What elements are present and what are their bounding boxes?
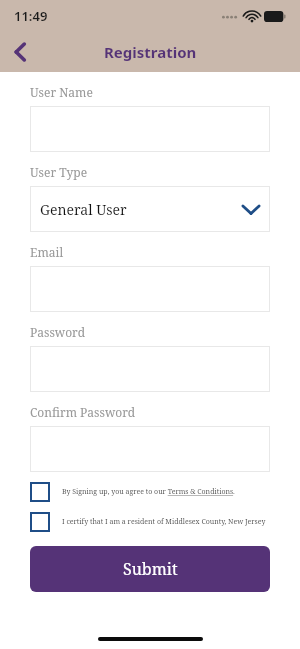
staticText: 11:49 [14, 7, 48, 25]
button[interactable]: Submit [30, 546, 270, 592]
staticText: By Signing up, you agree to our Terms & … [62, 487, 235, 497]
button[interactable] [30, 266, 270, 312]
staticText: I certify that I am a resident of Middle… [62, 517, 266, 527]
button[interactable] [30, 106, 270, 152]
button[interactable]: Back [0, 32, 40, 72]
staticText: User Name [30, 84, 93, 100]
button[interactable]: By Signing up, you agree to our Terms & … [30, 482, 270, 502]
button[interactable] [30, 346, 270, 392]
staticText: Submit [123, 558, 178, 580]
button[interactable]: I certify that I am a resident of Middle… [30, 512, 270, 532]
staticText: Registration [104, 42, 197, 62]
staticText: Password [30, 324, 86, 340]
staticText: Email [30, 244, 64, 260]
staticText: User Type [30, 164, 88, 180]
button[interactable]: General User [30, 186, 270, 232]
staticText: Confirm Password [30, 404, 136, 420]
staticText: General User [40, 200, 127, 219]
button[interactable] [30, 426, 270, 472]
